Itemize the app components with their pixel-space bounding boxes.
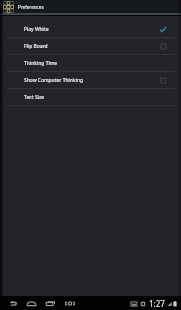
button[interactable]: Home [22, 296, 41, 310]
staticText: Preferences [18, 4, 44, 10]
button[interactable]: Thinking Time [0, 55, 181, 71]
button[interactable]: Flip Board [0, 38, 181, 54]
staticText: Show Computer Thinking [24, 77, 155, 84]
button[interactable]: Text Size [0, 89, 181, 105]
staticText: Flip Board [24, 43, 155, 50]
button[interactable]: Back [3, 296, 22, 310]
button[interactable]: Play White [0, 21, 181, 37]
staticText: 1:27 [149, 298, 165, 309]
button[interactable]: Screenshot [60, 296, 79, 310]
staticText: Text Size [24, 94, 155, 101]
staticText: Play White [24, 26, 155, 33]
staticText: Thinking Time [24, 60, 155, 67]
button[interactable]: System status [131, 298, 181, 309]
button[interactable]: Recent apps [41, 296, 60, 310]
button[interactable]: Show Computer Thinking [0, 72, 181, 88]
